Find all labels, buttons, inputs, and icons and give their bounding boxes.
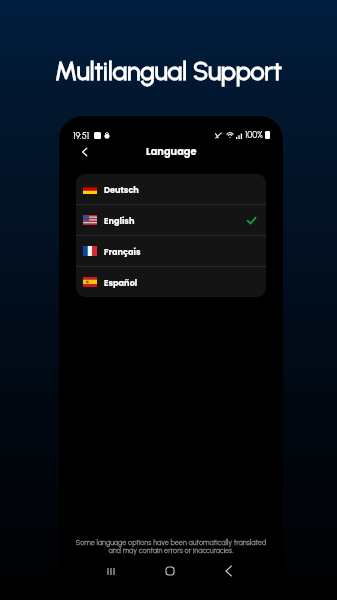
staticText: Deutsch [104, 184, 139, 195]
staticText: 19:51 [73, 130, 90, 141]
button[interactable]: English [76, 205, 266, 235]
staticText: Language [146, 145, 197, 159]
staticText: Français [104, 246, 141, 257]
staticText: Some language options have been automati… [73, 538, 269, 555]
button[interactable]: Español [76, 267, 266, 297]
button[interactable]: Français [76, 236, 266, 266]
staticText: 100% [245, 130, 263, 140]
button[interactable]: Back [75, 142, 95, 162]
staticText: English [104, 215, 135, 226]
staticText: Multilangual Support [0, 56, 337, 86]
staticText: Español [104, 277, 138, 288]
button[interactable]: Home [156, 563, 184, 579]
button[interactable]: Back [214, 563, 242, 579]
button[interactable]: Deutsch [76, 174, 266, 204]
button[interactable]: Recent apps [97, 563, 125, 579]
